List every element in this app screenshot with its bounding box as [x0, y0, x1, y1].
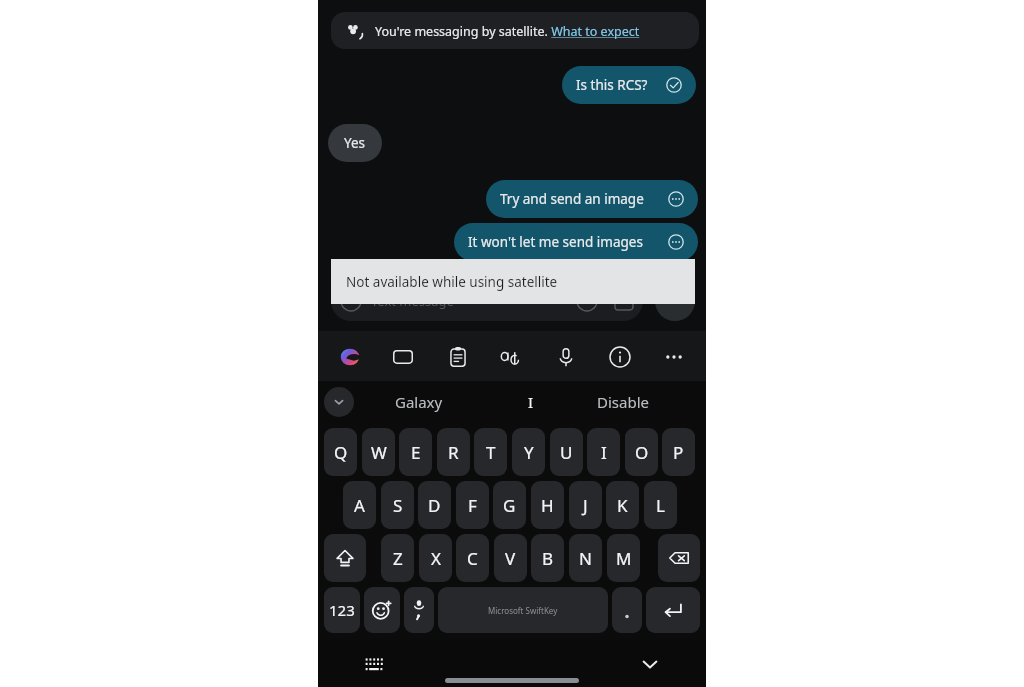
- button[interactable]: F: [456, 481, 489, 529]
- button[interactable]: Disable: [570, 387, 675, 417]
- button[interactable]: P: [662, 428, 695, 476]
- button[interactable]: Voice and comma: [404, 587, 434, 633]
- staticText: L: [656, 494, 665, 517]
- button[interactable]: Enter: [646, 587, 700, 633]
- button[interactable]: Voice input: [548, 339, 584, 375]
- staticText: Z: [393, 547, 403, 570]
- staticText: F: [468, 494, 477, 517]
- button[interactable]: X: [419, 534, 452, 582]
- button[interactable]: Info: [602, 339, 638, 375]
- button[interactable]: S: [381, 481, 414, 529]
- staticText: B: [542, 547, 554, 570]
- button[interactable]: Hide keyboard: [634, 648, 666, 680]
- staticText: It won't let me send images: [468, 233, 643, 251]
- staticText: V: [505, 547, 516, 570]
- staticText: Y: [524, 441, 534, 464]
- staticText: You're messaging by satellite. What to e…: [375, 23, 640, 40]
- staticText: Yes: [344, 134, 366, 152]
- button[interactable]: I: [587, 428, 620, 476]
- staticText: Disable: [597, 392, 649, 412]
- button[interactable]: Y: [512, 428, 545, 476]
- staticText: Not available while using satellite: [346, 273, 558, 291]
- staticText: Q: [334, 441, 348, 464]
- button[interactable]: N: [569, 534, 602, 582]
- button[interactable]: Try and send an image: [486, 180, 698, 218]
- button[interactable]: E: [399, 428, 432, 476]
- staticText: Galaxy: [395, 392, 443, 412]
- button[interactable]: B: [531, 534, 564, 582]
- button[interactable]: Galaxy: [366, 387, 471, 417]
- button[interactable]: Emoji: [364, 587, 400, 633]
- button[interactable]: M: [607, 534, 640, 582]
- button[interactable]: Punctuation: [612, 587, 642, 633]
- staticText: T: [486, 441, 496, 464]
- staticText: C: [467, 547, 478, 570]
- button[interactable]: J: [569, 481, 602, 529]
- staticText: I: [601, 441, 607, 464]
- staticText: J: [583, 494, 588, 517]
- staticText: W: [371, 441, 387, 464]
- button[interactable]: L: [644, 481, 677, 529]
- staticText: Text message: [371, 292, 454, 310]
- staticText: Is this RCS?: [576, 76, 648, 94]
- button[interactable]: Backspace: [658, 534, 700, 582]
- button[interactable]: A: [343, 481, 376, 529]
- button[interactable]: W: [362, 428, 395, 476]
- staticText: N: [579, 547, 592, 570]
- button[interactable]: 123: [324, 587, 360, 633]
- button[interactable]: Text message: [331, 281, 643, 321]
- button[interactable]: Keyboard layout: [358, 648, 390, 680]
- button[interactable]: Shift: [324, 534, 366, 582]
- button[interactable]: Clipboard: [440, 339, 476, 375]
- button[interactable]: Expand: [324, 387, 354, 417]
- staticText: H: [541, 494, 554, 517]
- staticText: S: [393, 494, 403, 517]
- staticText: K: [617, 494, 628, 517]
- button[interactable]: GIF: [385, 339, 421, 375]
- staticText: Try and send an image: [500, 190, 644, 208]
- button[interactable]: U: [550, 428, 583, 476]
- button[interactable]: Copilot: [332, 339, 368, 375]
- button[interactable]: R: [437, 428, 470, 476]
- button[interactable]: You're messaging by satellite. What to e…: [331, 12, 699, 49]
- button[interactable]: H: [531, 481, 564, 529]
- staticText: E: [411, 441, 421, 464]
- staticText: Microsoft SwiftKey: [488, 605, 558, 616]
- button[interactable]: Z: [381, 534, 414, 582]
- staticText: M: [616, 547, 632, 570]
- button[interactable]: More: [656, 339, 692, 375]
- button[interactable]: Q: [324, 428, 357, 476]
- button[interactable]: Space: [438, 587, 608, 633]
- button[interactable]: D: [418, 481, 451, 529]
- button[interactable]: Send: [655, 281, 695, 321]
- staticText: O: [635, 441, 649, 464]
- staticText: A: [354, 494, 365, 517]
- button[interactable]: T: [474, 428, 507, 476]
- button[interactable]: I: [478, 387, 583, 417]
- button[interactable]: V: [494, 534, 527, 582]
- button[interactable]: Is this RCS?: [562, 66, 696, 104]
- staticText: 123: [329, 600, 355, 620]
- button[interactable]: C: [456, 534, 489, 582]
- staticText: D: [428, 494, 441, 517]
- staticText: U: [560, 441, 573, 464]
- staticText: P: [673, 441, 684, 464]
- button[interactable]: G: [493, 481, 526, 529]
- staticText: X: [431, 547, 441, 570]
- staticText: G: [503, 494, 516, 517]
- button[interactable]: K: [606, 481, 639, 529]
- staticText: I: [528, 392, 534, 412]
- button[interactable]: Not available while using satellite: [331, 259, 695, 304]
- staticText: R: [448, 441, 459, 464]
- button[interactable]: It won't let me send images: [454, 223, 698, 261]
- button[interactable]: Translate: [493, 339, 529, 375]
- button[interactable]: Yes: [328, 124, 382, 162]
- button[interactable]: O: [625, 428, 658, 476]
